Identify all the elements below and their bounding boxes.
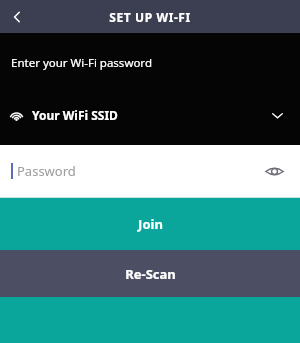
staticText: Your WiFi SSID [32,107,118,123]
staticText: Re-Scan [125,265,176,283]
button[interactable]: Join [0,198,300,250]
button[interactable]: Re-Scan [0,250,300,297]
button[interactable]: Your WiFi SSID [0,98,300,132]
button[interactable]: Back [0,0,34,33]
staticText: SET UP WI-FI [109,9,191,25]
staticText: Enter your Wi-Fi password [11,55,152,71]
button[interactable]: Password [0,145,300,197]
staticText: Password [17,162,76,180]
staticText: Join [138,215,163,233]
button[interactable]: Show password [261,158,287,184]
other: Expand network list [268,106,286,124]
